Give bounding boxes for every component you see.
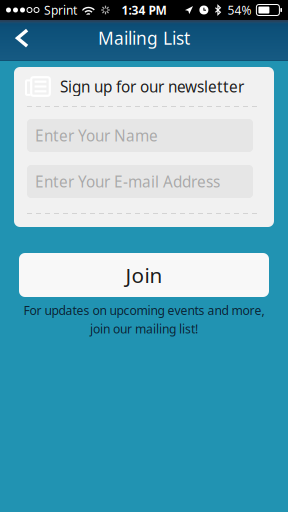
staticText: Enter Your Name — [35, 125, 158, 146]
staticText: Mailing List — [98, 26, 190, 50]
staticText: For updates on upcoming events and more, — [23, 302, 264, 318]
staticText: join our mailing list! — [90, 320, 198, 337]
button[interactable]: Join — [19, 253, 269, 297]
button[interactable]: Back — [0, 20, 44, 61]
staticText: Sprint — [44, 2, 77, 18]
staticText: 54% — [227, 2, 251, 18]
staticText: Sign up for our newsletter — [60, 76, 244, 97]
staticText: Join — [125, 261, 162, 289]
staticText: 1:34 PM — [121, 2, 166, 18]
staticText: Enter Your E-mail Address — [35, 171, 220, 192]
